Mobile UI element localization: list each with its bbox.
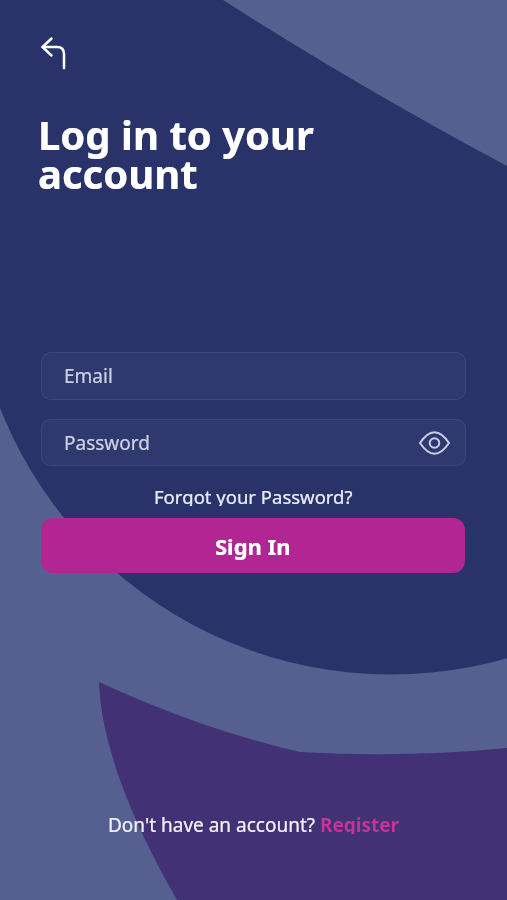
- staticText: Password: [64, 430, 150, 456]
- staticText: Log in to your account: [38, 107, 314, 200]
- button[interactable]: Forgot your Password?: [0, 484, 507, 506]
- staticText: Don't have an account?: [108, 812, 320, 834]
- button[interactable]: Sign In: [41, 518, 465, 573]
- button[interactable]: [419, 432, 450, 454]
- staticText: Sign In: [215, 531, 291, 561]
- staticText: Forgot your Password?: [154, 484, 353, 506]
- button[interactable]: Password: [41, 419, 466, 466]
- button[interactable]: Don't have an account?: [0, 812, 507, 834]
- button[interactable]: [30, 30, 76, 76]
- button[interactable]: Email: [41, 352, 466, 400]
- staticText: Email: [64, 363, 113, 389]
- staticText: Register: [320, 812, 400, 834]
